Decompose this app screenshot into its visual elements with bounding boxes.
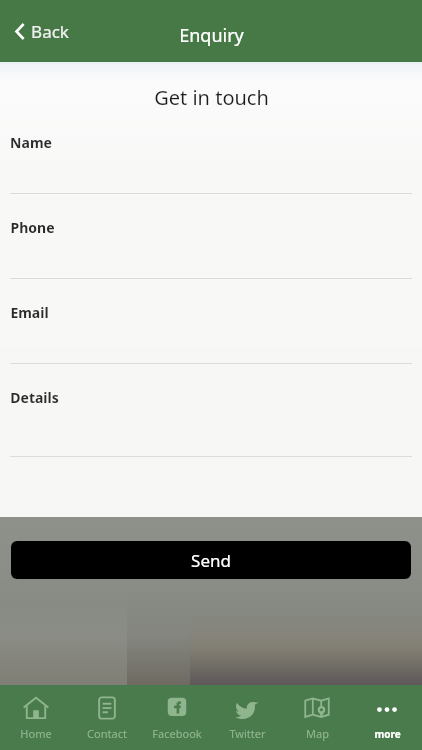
staticText: Name [10, 133, 52, 152]
button[interactable]: Map [282, 694, 352, 741]
button[interactable]: Email [0, 303, 422, 388]
button[interactable]: Home [0, 694, 71, 741]
staticText: Send [191, 549, 231, 572]
button[interactable]: Contact [71, 694, 142, 741]
button[interactable]: Name [0, 133, 422, 218]
button[interactable]: Twitter [212, 694, 282, 741]
button[interactable]: Details [0, 388, 422, 457]
staticText: Get in touch [154, 84, 269, 111]
staticText: Phone [10, 218, 55, 237]
staticText: Enquiry [179, 23, 244, 48]
staticText: Facebook [152, 726, 202, 741]
button[interactable]: Send [11, 541, 411, 579]
staticText: Contact [87, 726, 127, 741]
staticText: Twitter [229, 726, 266, 741]
button[interactable]: more [352, 695, 422, 741]
staticText: Map [306, 726, 329, 741]
staticText: Details [10, 388, 59, 407]
staticText: Home [20, 726, 52, 741]
button[interactable]: Back [10, 14, 75, 49]
button[interactable]: Phone [0, 218, 422, 303]
staticText: Back [31, 20, 69, 43]
button[interactable]: Facebook [142, 694, 212, 741]
staticText: more [374, 727, 401, 741]
staticText: Email [10, 303, 49, 322]
